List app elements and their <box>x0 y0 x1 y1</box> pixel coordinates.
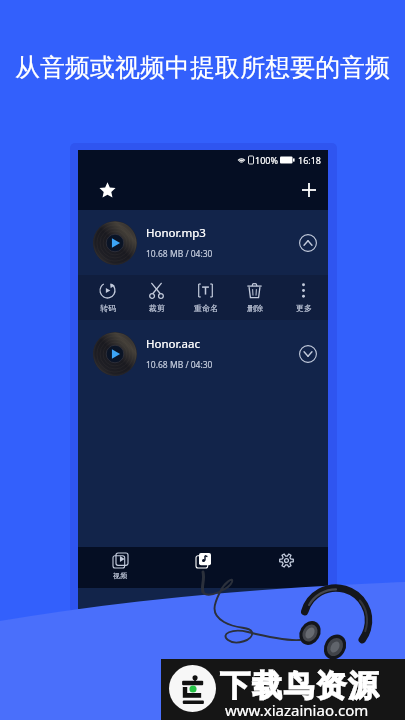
staticText: www.xiazainiao.com <box>225 700 369 720</box>
button[interactable]: 删除 <box>230 282 279 313</box>
staticText: 转码 <box>100 303 116 313</box>
button[interactable]: Collapse <box>294 229 322 257</box>
button[interactable]: 重命名 <box>181 282 230 313</box>
button[interactable]: 转码 <box>83 282 132 313</box>
staticText: 16:18 <box>298 154 322 166</box>
staticText: 重命名 <box>194 303 218 313</box>
staticText: 视频 <box>113 571 127 580</box>
button[interactable]: 更多 <box>279 282 328 313</box>
button[interactable]: Honor.aac <box>78 320 328 387</box>
staticText: Honor.mp3 <box>146 225 206 241</box>
button[interactable]: Audio <box>162 547 245 571</box>
staticText: 10.68 MB / 04:30 <box>146 359 213 371</box>
staticText: 裁剪 <box>149 303 165 313</box>
staticText: Honor.aac <box>146 336 200 352</box>
button[interactable]: 裁剪 <box>132 282 181 313</box>
button[interactable]: Settings <box>245 547 328 571</box>
staticText: 更多 <box>296 303 312 313</box>
staticText: 10.68 MB / 04:30 <box>146 248 213 260</box>
staticText: 删除 <box>247 303 263 313</box>
staticText: 100% <box>255 154 278 166</box>
button[interactable]: Favorites <box>93 176 121 204</box>
staticText: 下载鸟资源 <box>219 667 379 705</box>
button[interactable]: Expand <box>294 340 322 368</box>
button[interactable]: Add <box>295 176 323 204</box>
staticText: 从音频或视频中提取所想要的音频 <box>15 52 390 83</box>
button[interactable]: Videos <box>78 547 162 580</box>
button[interactable]: Honor.mp3 <box>78 210 328 275</box>
